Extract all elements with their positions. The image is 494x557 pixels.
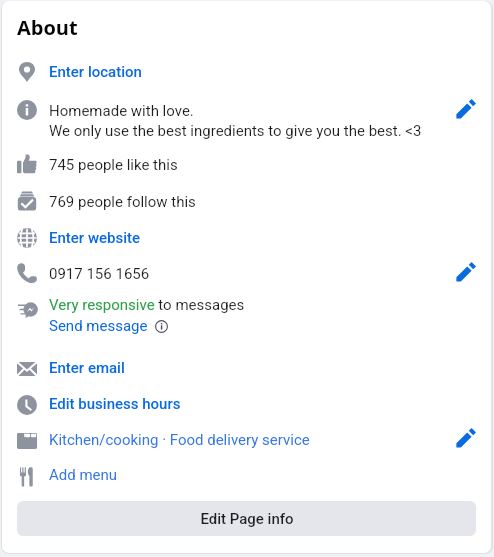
staticText: Send message	[49, 317, 148, 335]
staticText: 0917 156 1656	[49, 265, 150, 283]
button[interactable]: Edit business hours	[2, 384, 491, 420]
staticText: Edit Page info	[200, 510, 294, 528]
staticText: Very responsive to messages	[49, 296, 245, 314]
staticText: About	[17, 14, 78, 41]
button[interactable]: Enter website	[2, 219, 491, 255]
button[interactable]: Enter email	[2, 349, 491, 385]
staticText: Enter website	[49, 229, 141, 247]
staticText: Enter email	[49, 359, 125, 377]
button[interactable]: Edit	[454, 97, 478, 121]
button[interactable]: Homemade with love. We only use the best…	[2, 91, 491, 145]
button[interactable]: 0917 156 1656	[2, 254, 491, 286]
button[interactable]: Very responsive to messages	[2, 286, 491, 338]
button[interactable]: Add menu	[2, 456, 491, 492]
button[interactable]: Enter location	[2, 53, 491, 91]
staticText: Enter location	[49, 63, 142, 81]
staticText: Edit business hours	[49, 395, 181, 413]
button[interactable]: Edit	[454, 426, 478, 450]
staticText: 769 people follow this	[49, 193, 196, 211]
staticText: Add menu	[49, 466, 118, 484]
staticText: Homemade with love. We only use the best…	[49, 102, 422, 139]
staticText: 745 people like this	[49, 156, 178, 174]
button[interactable]: Edit	[454, 260, 478, 284]
button[interactable]: Kitchen/cooking · Food delivery service	[2, 420, 491, 456]
button[interactable]: Edit Page info	[17, 501, 476, 536]
button[interactable]: 745 people like this	[2, 146, 491, 182]
button[interactable]: 769 people follow this	[2, 182, 491, 218]
staticText: Kitchen/cooking · Food delivery service	[49, 431, 310, 449]
